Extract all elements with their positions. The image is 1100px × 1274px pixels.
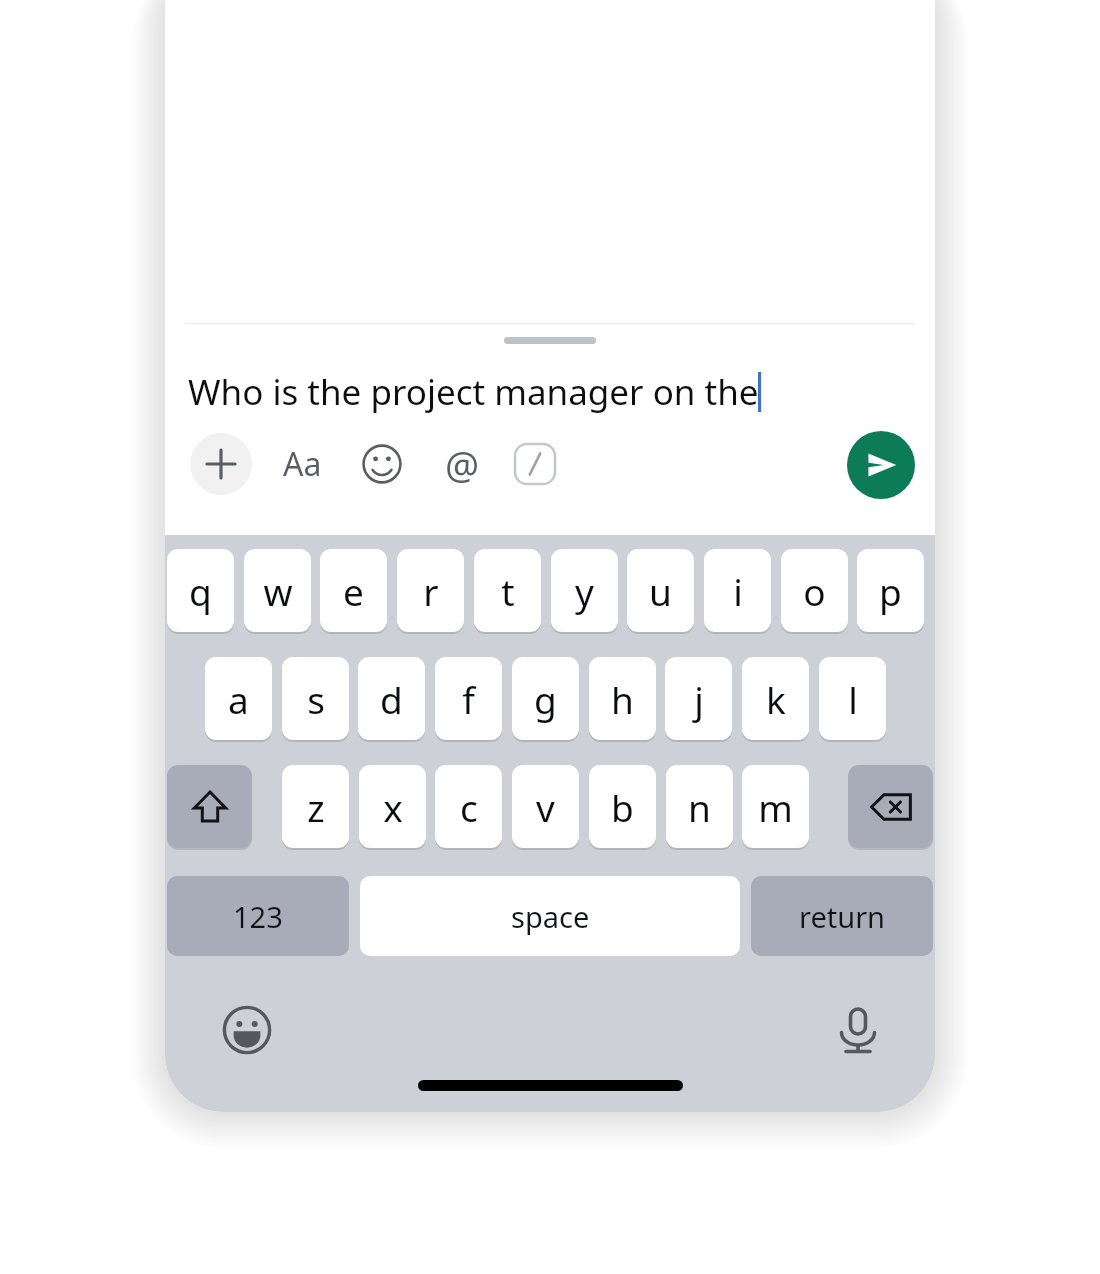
staticText: @ <box>445 438 480 490</box>
button[interactable]: c <box>435 765 502 848</box>
staticText: a <box>228 674 249 724</box>
button[interactable]: return <box>751 876 933 956</box>
button[interactable]: Mention someone <box>431 433 493 495</box>
staticText: y <box>575 566 594 616</box>
button[interactable]: Add attachment <box>190 433 252 495</box>
staticText: k <box>766 674 786 724</box>
staticText: 123 <box>233 897 283 936</box>
staticText: z <box>307 782 325 832</box>
staticText: v <box>536 782 555 832</box>
staticText: f <box>462 674 475 724</box>
staticText: t <box>501 566 515 616</box>
staticText: l <box>848 674 858 724</box>
button[interactable]: u <box>627 549 694 632</box>
button[interactable]: Shift <box>167 765 252 848</box>
staticText: m <box>758 782 793 832</box>
button[interactable]: b <box>589 765 656 848</box>
button[interactable]: g <box>512 657 579 740</box>
button[interactable]: y <box>551 549 618 632</box>
button[interactable]: s <box>282 657 349 740</box>
button[interactable]: Dictate with microphone <box>828 1000 888 1060</box>
staticText: h <box>611 674 634 724</box>
button[interactable]: o <box>781 549 848 632</box>
button[interactable]: m <box>742 765 809 848</box>
staticText: d <box>380 674 403 724</box>
staticText: p <box>879 566 902 616</box>
staticText: w <box>263 566 293 616</box>
button[interactable]: l <box>819 657 886 740</box>
button[interactable]: e <box>320 549 387 632</box>
staticText: s <box>307 674 325 724</box>
button[interactable]: w <box>244 549 311 632</box>
staticText: r <box>423 566 439 616</box>
staticText: g <box>534 674 557 724</box>
button[interactable]: h <box>589 657 656 740</box>
staticText: e <box>343 566 364 616</box>
staticText: Aa <box>283 442 322 486</box>
button[interactable]: t <box>474 549 541 632</box>
button[interactable]: 123 <box>167 876 349 956</box>
button[interactable]: z <box>282 765 349 848</box>
button[interactable]: space <box>360 876 740 956</box>
button[interactable]: p <box>857 549 924 632</box>
button[interactable]: Send message <box>847 431 915 499</box>
button[interactable]: d <box>358 657 425 740</box>
staticText: o <box>803 566 826 616</box>
button[interactable]: a <box>205 657 272 740</box>
button[interactable]: x <box>359 765 426 848</box>
button[interactable]: j <box>665 657 732 740</box>
button[interactable]: Backspace <box>848 765 933 848</box>
staticText: b <box>611 782 634 832</box>
staticText: q <box>189 566 212 616</box>
staticText: j <box>694 674 704 724</box>
staticText: i <box>733 566 743 616</box>
staticText: x <box>383 782 403 832</box>
staticText: u <box>649 566 672 616</box>
button[interactable]: Emoji <box>351 433 413 495</box>
button[interactable]: Emoji keyboard <box>217 1000 277 1060</box>
staticText: space <box>511 897 590 936</box>
staticText: n <box>688 782 711 832</box>
button[interactable]: i <box>704 549 771 632</box>
staticText: Who is the project manager on the <box>188 368 759 416</box>
staticText: c <box>460 782 478 832</box>
button[interactable]: Slash command <box>513 442 557 486</box>
button[interactable]: n <box>666 765 733 848</box>
button[interactable]: q <box>167 549 234 632</box>
staticText: return <box>799 897 886 936</box>
button[interactable]: k <box>742 657 809 740</box>
button[interactable]: f <box>435 657 502 740</box>
button[interactable]: r <box>397 549 464 632</box>
button[interactable]: Formatting <box>271 433 333 495</box>
button[interactable]: v <box>512 765 579 848</box>
